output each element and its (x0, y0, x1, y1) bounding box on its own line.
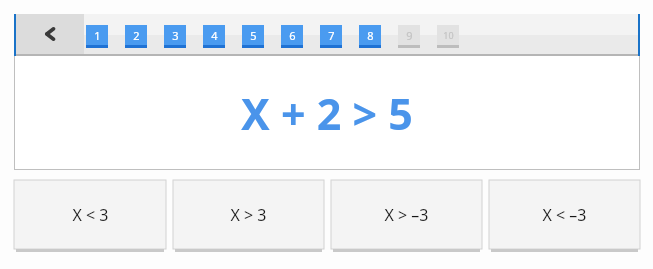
button[interactable]: Back (16, 14, 84, 54)
button[interactable]: X > –3 (331, 180, 482, 253)
button[interactable]: 3 (164, 25, 186, 48)
staticText: 8 (367, 28, 374, 43)
staticText: X + 2 > 5 (241, 84, 413, 143)
button[interactable]: 9 (398, 25, 420, 48)
staticText: 1 (94, 28, 101, 43)
staticText: 10 (443, 29, 454, 41)
staticText: 2 (133, 28, 140, 43)
button[interactable]: X < –3 (489, 180, 640, 253)
button[interactable]: 2 (125, 25, 147, 48)
button[interactable]: 6 (281, 25, 303, 48)
button[interactable]: 4 (203, 25, 225, 48)
button[interactable]: 7 (320, 25, 342, 48)
staticText: 6 (289, 28, 296, 43)
staticText: X < –3 (542, 204, 587, 226)
staticText: 3 (172, 28, 179, 43)
staticText: 7 (328, 28, 335, 43)
staticText: 4 (211, 28, 218, 43)
button[interactable]: 1 (86, 25, 108, 48)
button[interactable]: X < 3 (14, 180, 166, 253)
staticText: 9 (406, 28, 413, 43)
button[interactable]: 5 (242, 25, 264, 48)
staticText: X > 3 (230, 204, 267, 226)
staticText: X < 3 (72, 204, 109, 226)
button[interactable]: X > 3 (173, 180, 324, 253)
staticText: 5 (250, 28, 257, 43)
button[interactable]: 10 (437, 25, 459, 48)
staticText: X > –3 (384, 204, 429, 226)
button[interactable]: 8 (359, 25, 381, 48)
